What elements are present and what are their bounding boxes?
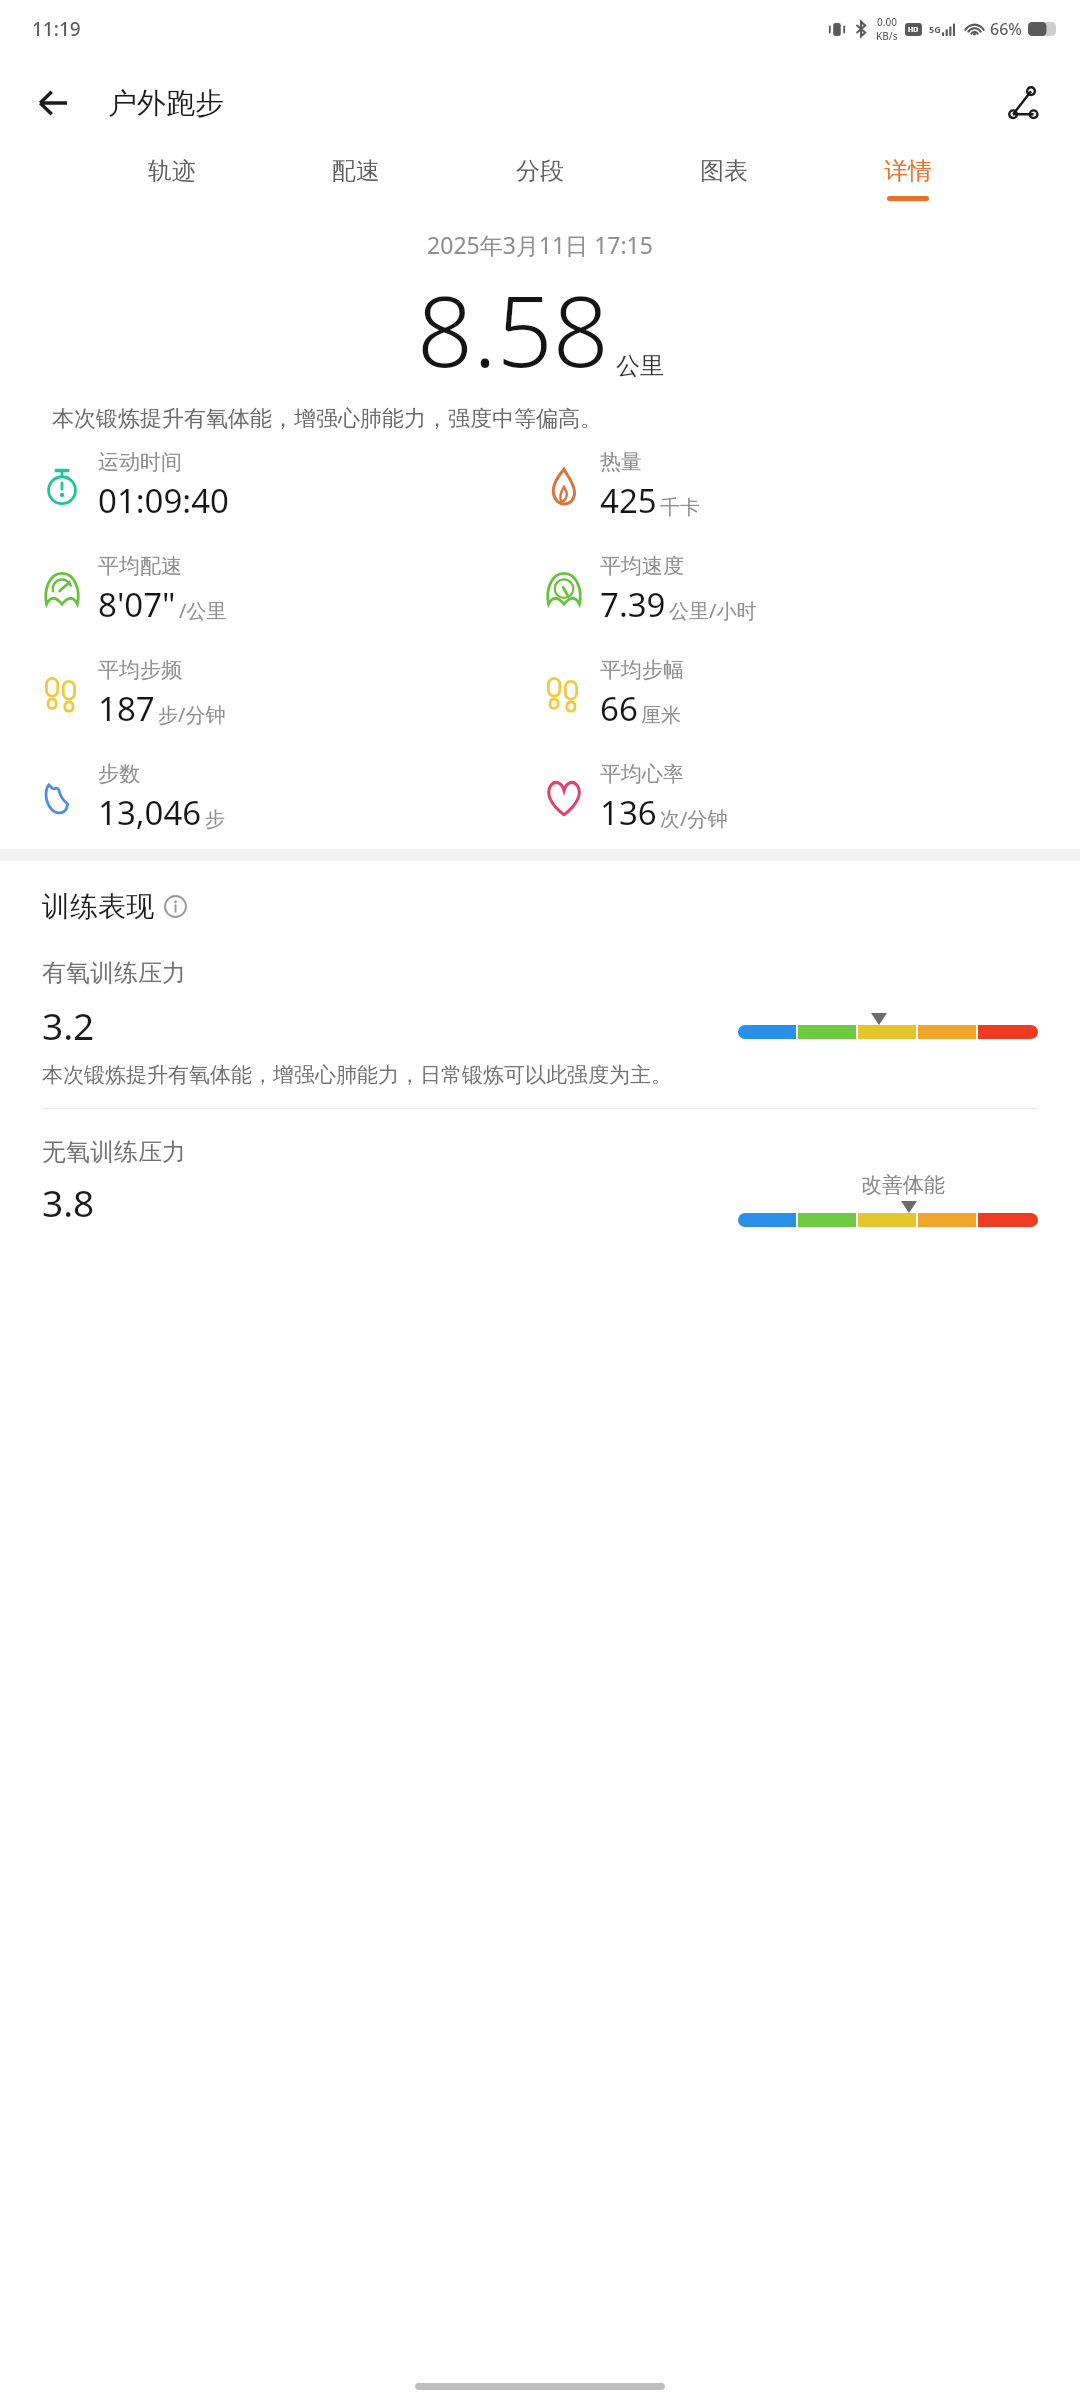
staticText: 8'07" <box>98 582 176 627</box>
staticText: 厘米 <box>641 703 681 728</box>
staticText: 8.58 <box>417 262 609 395</box>
button[interactable]: 运动时间 <box>38 449 540 523</box>
staticText: 平均心率 <box>600 761 684 787</box>
staticText: 公里 <box>616 351 664 381</box>
staticText: 次/分钟 <box>660 805 728 832</box>
staticText: 187 <box>98 686 155 731</box>
button[interactable]: 步数 <box>38 761 540 835</box>
staticText: 3.2 <box>42 1000 95 1050</box>
staticText: 步 <box>205 807 225 832</box>
staticText: 2025年3月11日 17:15 <box>0 229 1080 260</box>
button[interactable]: Back <box>26 76 80 130</box>
staticText: 步/分钟 <box>158 701 226 728</box>
button[interactable]: 平均步频 <box>38 657 540 731</box>
button[interactable]: 轨迹 <box>134 148 210 209</box>
button[interactable]: 分段 <box>502 148 578 209</box>
staticText: /公里 <box>179 597 227 624</box>
staticText: 13,046 <box>98 790 202 835</box>
staticText: 运动时间 <box>98 449 182 475</box>
button[interactable]: 图表 <box>686 148 762 209</box>
staticText: HD <box>908 25 919 35</box>
button[interactable]: 训练表现 <box>42 889 187 924</box>
staticText: 训练表现 <box>42 889 154 924</box>
button[interactable]: 平均心率 <box>540 761 1042 835</box>
staticText: 无氧训练压力 <box>42 1137 186 1167</box>
staticText: 本次锻炼提升有氧体能，增强心肺能力，日常锻炼可以此强度为主。 <box>42 1062 672 1088</box>
staticText: 136 <box>600 790 657 835</box>
staticText: 公里/小时 <box>669 597 757 624</box>
staticText: 66 <box>600 686 638 731</box>
staticText: 图表 <box>700 156 748 186</box>
staticText: 有氧训练压力 <box>42 958 186 988</box>
staticText: 轨迹 <box>148 156 196 186</box>
button[interactable]: 热量 <box>540 449 1042 523</box>
staticText: 7.39 <box>600 582 666 627</box>
staticText: 66% <box>990 18 1022 40</box>
staticText: 详情 <box>884 156 932 186</box>
staticText: 01:09:40 <box>98 478 229 523</box>
other: Info <box>164 895 187 918</box>
button[interactable]: 详情 <box>870 148 946 209</box>
staticText: 改善体能 <box>861 1172 945 1198</box>
staticText: 平均步幅 <box>600 657 684 683</box>
staticText: 3.8 <box>42 1177 95 1227</box>
staticText: 户外跑步 <box>108 85 224 122</box>
staticText: 平均步频 <box>98 657 182 683</box>
button[interactable]: 平均步幅 <box>540 657 1042 731</box>
staticText: 平均配速 <box>98 553 182 579</box>
staticText: 0.00 <box>877 15 897 29</box>
staticText: 本次锻炼提升有氧体能，增强心肺能力，强度中等偏高。 <box>52 405 1028 433</box>
staticText: 5G <box>929 23 941 35</box>
staticText: 热量 <box>600 449 642 475</box>
staticText: 千卡 <box>660 495 700 520</box>
staticText: 配速 <box>332 156 380 186</box>
staticText: 11:19 <box>32 16 81 42</box>
staticText: 步数 <box>98 761 140 787</box>
button[interactable]: 平均速度 <box>540 553 1042 627</box>
staticText: KB/s <box>876 29 898 43</box>
button[interactable]: Share <box>996 75 1052 131</box>
button[interactable]: 平均配速 <box>38 553 540 627</box>
button[interactable]: 配速 <box>318 148 394 209</box>
staticText: 平均速度 <box>600 553 684 579</box>
staticText: 425 <box>600 478 657 523</box>
staticText: 分段 <box>516 156 564 186</box>
